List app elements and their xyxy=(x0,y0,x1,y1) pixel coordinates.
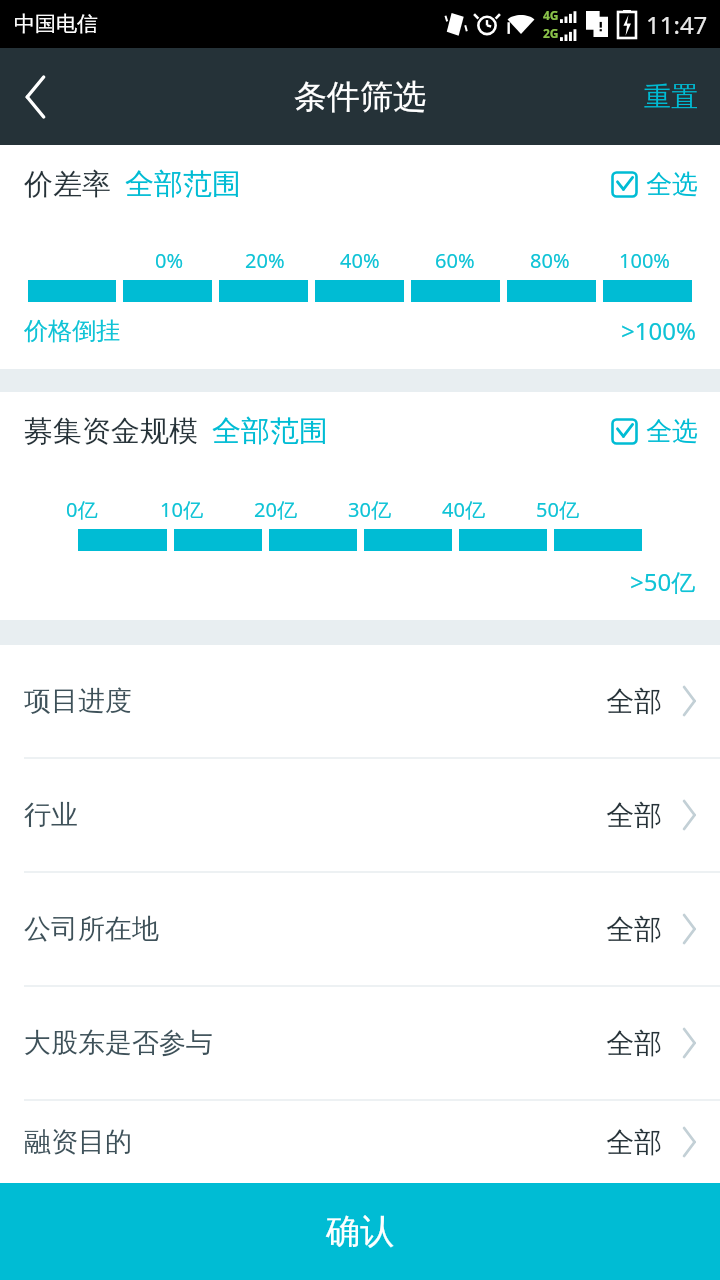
button[interactable]: 公司所在地 xyxy=(0,873,720,985)
button[interactable]: 行业 xyxy=(0,759,720,871)
button[interactable]: 确认 xyxy=(0,1183,720,1280)
staticText: 条件筛选 xyxy=(294,76,426,118)
staticText: 全部范围 xyxy=(212,413,328,450)
button[interactable]: 重置 xyxy=(622,62,720,132)
staticText: 大股东是否参与 xyxy=(24,1026,213,1060)
staticText: 全部 xyxy=(606,1026,662,1061)
staticText: 11:47 xyxy=(646,8,708,41)
staticText: 确认 xyxy=(326,1210,394,1253)
staticText: 4G xyxy=(543,7,559,23)
staticText: 公司所在地 xyxy=(24,912,159,946)
staticText: 30亿 xyxy=(348,496,391,523)
staticText: 重置 xyxy=(644,80,698,114)
staticText: 融资目的 xyxy=(24,1125,132,1159)
staticText: 40% xyxy=(340,247,380,274)
staticText: 20% xyxy=(245,247,285,274)
staticText: 10亿 xyxy=(160,496,203,523)
staticText: 价差率 xyxy=(24,166,111,203)
staticText: 40亿 xyxy=(442,496,485,523)
staticText: 募集资金规模 xyxy=(24,413,198,450)
staticText: 行业 xyxy=(24,798,78,832)
staticText: 100% xyxy=(619,247,670,274)
button[interactable]: 融资目的 xyxy=(0,1101,720,1183)
staticText: 80% xyxy=(530,247,570,274)
staticText: >50亿 xyxy=(630,565,696,598)
staticText: 全部范围 xyxy=(125,166,241,203)
staticText: 项目进度 xyxy=(24,684,132,718)
button[interactable]: 大股东是否参与 xyxy=(0,987,720,1099)
button[interactable]: 全选 xyxy=(611,168,698,201)
staticText: 0% xyxy=(155,247,184,274)
staticText: 50亿 xyxy=(536,496,579,523)
staticText: 全部 xyxy=(606,798,662,833)
staticText: >100% xyxy=(621,314,696,347)
staticText: 0亿 xyxy=(66,496,98,523)
staticText: 全选 xyxy=(646,415,698,448)
staticText: 60% xyxy=(435,247,475,274)
staticText: 价格倒挂 xyxy=(24,316,120,346)
staticText: 2G xyxy=(543,25,559,41)
staticText: 中国电信 xyxy=(14,11,98,37)
staticText: 全部 xyxy=(606,1125,662,1160)
button[interactable]: 全选 xyxy=(611,415,698,448)
staticText: 20亿 xyxy=(254,496,297,523)
staticText: 全部 xyxy=(606,912,662,947)
button[interactable]: Back xyxy=(0,61,72,133)
staticText: 全部 xyxy=(606,684,662,719)
staticText: 全选 xyxy=(646,168,698,201)
button[interactable]: 项目进度 xyxy=(0,645,720,757)
